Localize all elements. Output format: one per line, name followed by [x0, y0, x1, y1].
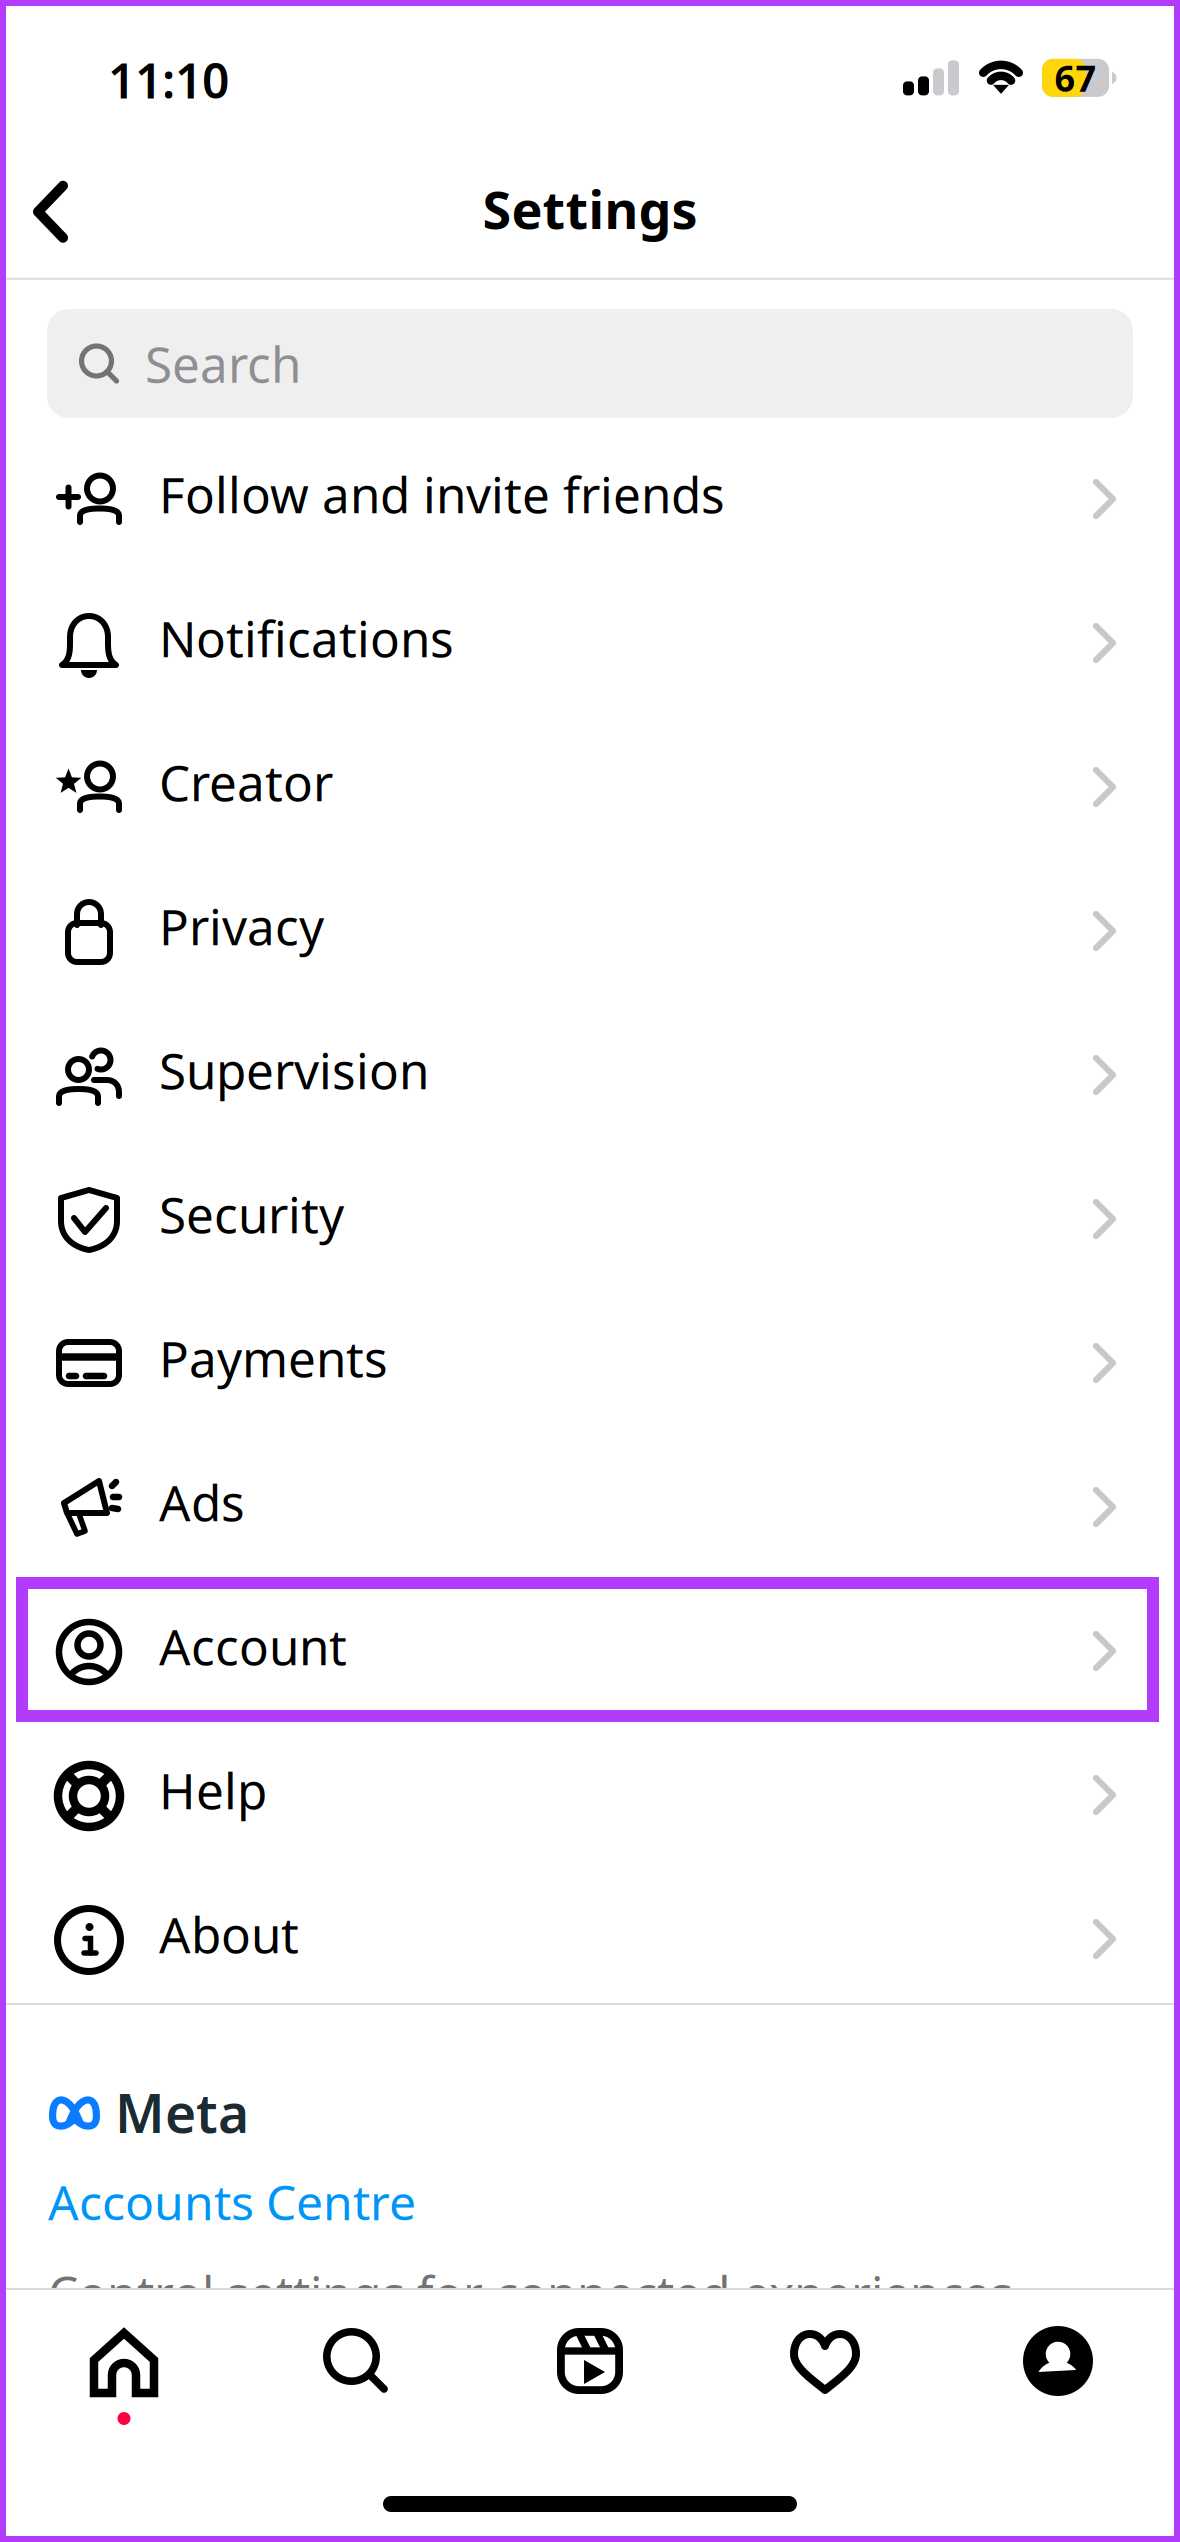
button[interactable]: Payments	[0, 1283, 1180, 1427]
button[interactable]: Privacy	[0, 851, 1180, 995]
button[interactable]: Help	[0, 1715, 1180, 1859]
button[interactable]: About	[0, 1859, 1180, 2003]
button[interactable]: Ads	[0, 1427, 1180, 1571]
staticText: Security	[159, 1181, 344, 1247]
button[interactable]: Back	[0, 152, 93, 256]
button[interactable]: Profile	[944, 2290, 1180, 2450]
button[interactable]: Activity	[708, 2290, 944, 2450]
staticText: Follow and invite friends	[159, 461, 725, 527]
button[interactable]: Notifications	[0, 563, 1180, 707]
button[interactable]: Security	[0, 1139, 1180, 1283]
button[interactable]: Supervision	[0, 995, 1180, 1139]
button[interactable]: Creator	[0, 707, 1180, 851]
staticText: Notifications	[159, 605, 454, 671]
staticText: Settings	[482, 174, 697, 243]
button[interactable]: Home	[0, 2290, 236, 2450]
button[interactable]: Account	[0, 1571, 1180, 1715]
staticText: Meta	[115, 2077, 249, 2148]
staticText: Privacy	[159, 893, 324, 959]
staticText: Account	[159, 1613, 347, 1679]
button[interactable]: Accounts Centre	[48, 2148, 1132, 2235]
staticText: 67	[1054, 54, 1096, 102]
staticText: Creator	[159, 749, 333, 815]
staticText: Search	[145, 331, 301, 396]
staticText: Supervision	[159, 1037, 429, 1103]
staticText: About	[159, 1901, 299, 1967]
button[interactable]: Search	[236, 2290, 472, 2450]
staticText: 11:10	[108, 48, 229, 112]
button[interactable]: Search	[0, 280, 1180, 419]
staticText: Ads	[159, 1469, 245, 1535]
staticText: Control settings for connected experienc…	[48, 2261, 1013, 2388]
button[interactable]: Reels	[472, 2290, 708, 2450]
staticText: Payments	[159, 1325, 388, 1391]
staticText: Help	[159, 1757, 267, 1823]
button[interactable]: Follow and invite friends	[0, 419, 1180, 563]
staticText: Accounts Centre	[48, 2170, 416, 2233]
